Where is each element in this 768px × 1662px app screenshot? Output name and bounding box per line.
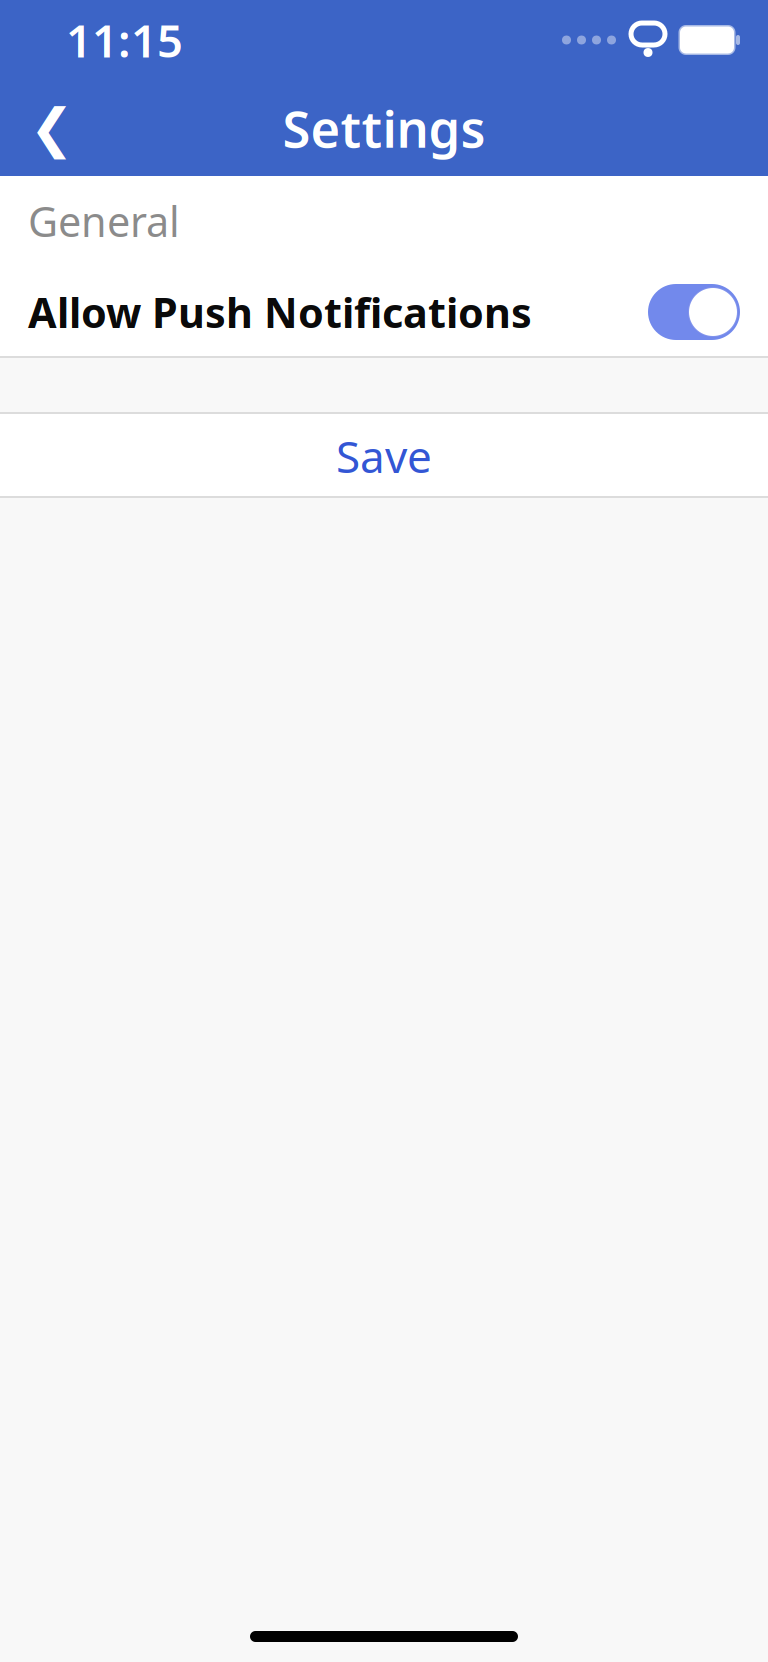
- staticText: General: [28, 194, 180, 248]
- button[interactable]: Allow Push Notifications: [0, 266, 768, 358]
- staticText: 11:15: [66, 10, 183, 70]
- staticText: Allow Push Notifications: [28, 285, 532, 339]
- button[interactable]: Save: [0, 414, 768, 498]
- staticText: Settings: [282, 94, 485, 162]
- staticText: ❮: [29, 98, 74, 158]
- staticText: Save: [336, 427, 432, 485]
- button[interactable]: Back: [14, 90, 90, 166]
